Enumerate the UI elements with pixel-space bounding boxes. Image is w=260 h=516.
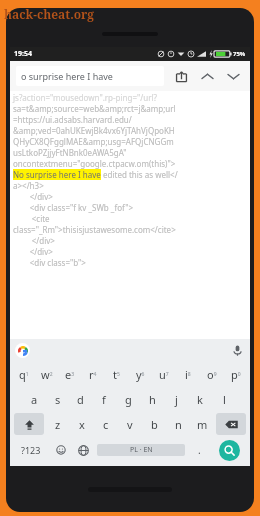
staticText: p0 xyxy=(231,367,241,382)
button[interactable]: m xyxy=(190,413,214,435)
staticText: u7 xyxy=(159,367,169,382)
button[interactable]: ?123 xyxy=(12,438,49,462)
staticText: t5 xyxy=(113,367,120,382)
button[interactable]: o9 xyxy=(200,363,224,385)
staticText: class="_Rm">thisisjustawesome.com</cite> xyxy=(13,224,247,235)
staticText: QHyCX8QFgglMAE&amp;usg=AFQjCNGGm xyxy=(13,136,247,147)
button[interactable]: o surprise here I have xyxy=(16,66,164,86)
staticText: b xyxy=(151,417,158,432)
button[interactable]: h xyxy=(140,388,164,410)
staticText: </div> xyxy=(13,191,247,202)
button[interactable]: i8 xyxy=(176,363,200,385)
button[interactable]: c xyxy=(94,413,118,435)
staticText: w2 xyxy=(41,367,53,382)
button[interactable]: p0 xyxy=(224,363,248,385)
staticText: hack-cheat.org xyxy=(4,6,95,22)
button[interactable]: Backspace xyxy=(216,413,246,435)
staticText: f xyxy=(102,392,106,407)
staticText: m xyxy=(197,417,208,432)
staticText: x xyxy=(79,417,85,432)
button[interactable]: y6 xyxy=(128,363,152,385)
button[interactable]: r4 xyxy=(81,363,104,385)
button[interactable]: Change language xyxy=(72,438,94,462)
staticText: 19:54 xyxy=(14,49,32,59)
staticText: y6 xyxy=(136,367,145,382)
button[interactable]: g xyxy=(116,388,140,410)
button[interactable]: w2 xyxy=(35,363,58,385)
button[interactable]: d xyxy=(69,388,92,410)
button[interactable]: Previous result xyxy=(196,65,218,87)
button[interactable]: Shift xyxy=(14,413,44,435)
button[interactable]: a xyxy=(23,388,46,410)
button[interactable]: . xyxy=(188,438,210,462)
button[interactable]: x xyxy=(70,413,94,435)
staticText: js?action="mousedown".rp-ping="/url? xyxy=(13,92,247,103)
button[interactable]: Voice input xyxy=(229,342,245,358)
staticText: j xyxy=(175,392,178,407)
staticText: &amp;ved=0ahUKEwjBk4vx6YjTAhVjQpoKH xyxy=(13,125,247,136)
staticText: a></h3> xyxy=(13,180,247,191)
button[interactable]: z xyxy=(46,413,70,435)
staticText: r4 xyxy=(89,367,97,382)
button[interactable]: u7 xyxy=(152,363,176,385)
staticText: ?123 xyxy=(21,444,41,456)
button[interactable]: s xyxy=(46,388,69,410)
staticText: <cite xyxy=(13,213,247,224)
staticText: sa=t&amp;source=web&amp;rct=j&amp;url xyxy=(13,103,247,114)
button[interactable]: t5 xyxy=(104,363,128,385)
staticText: l xyxy=(223,392,226,407)
staticText: d xyxy=(77,392,84,407)
button[interactable]: j xyxy=(164,388,188,410)
staticText: No surprise here I have xyxy=(13,169,101,180)
staticText: =https://ui.adsabs.harvard.edu/ xyxy=(13,114,247,125)
button[interactable]: e3 xyxy=(58,363,81,385)
staticText: edited this as well</ xyxy=(101,169,178,180)
button[interactable]: Search xyxy=(219,440,240,461)
staticText: </div> xyxy=(13,235,247,246)
staticText: s xyxy=(55,392,61,407)
staticText: PL · EN xyxy=(130,445,153,455)
staticText: <div class="b"> xyxy=(13,257,247,268)
staticText: k xyxy=(197,392,203,407)
staticText: o surprise here I have xyxy=(21,70,113,82)
button[interactable]: n xyxy=(166,413,190,435)
staticText: z xyxy=(55,417,61,432)
staticText: . xyxy=(198,443,201,457)
staticText: g xyxy=(125,392,132,407)
staticText: e3 xyxy=(65,367,75,382)
button[interactable]: Emoji xyxy=(49,438,72,462)
button[interactable]: PL · EN xyxy=(97,444,185,456)
staticText: n xyxy=(175,417,182,432)
button[interactable]: b xyxy=(142,413,166,435)
button[interactable]: f xyxy=(92,388,116,410)
staticText: h xyxy=(149,392,156,407)
staticText: usLtkoPZjjyFtNBnk0eAWA5gA" xyxy=(13,147,247,158)
staticText: c xyxy=(103,417,109,432)
staticText: o9 xyxy=(207,367,217,382)
button[interactable]: q1 xyxy=(12,363,35,385)
staticText: q1 xyxy=(19,367,29,382)
staticText: i8 xyxy=(185,367,191,382)
button[interactable]: Share page xyxy=(170,65,192,87)
staticText: oncontextmenu="google.ctpacw.om(this)"> xyxy=(13,158,247,169)
staticText: <div class="f kv _SWb _fof"> xyxy=(13,202,247,213)
staticText: a xyxy=(31,392,38,407)
button[interactable]: k xyxy=(188,388,212,410)
button[interactable]: v xyxy=(118,413,142,435)
staticText: </div> xyxy=(13,246,247,257)
staticText: 75% xyxy=(233,50,246,58)
button[interactable]: Next result xyxy=(222,65,244,87)
staticText: v xyxy=(127,417,133,432)
button[interactable]: l xyxy=(212,388,236,410)
button[interactable]: Google search xyxy=(15,343,30,358)
